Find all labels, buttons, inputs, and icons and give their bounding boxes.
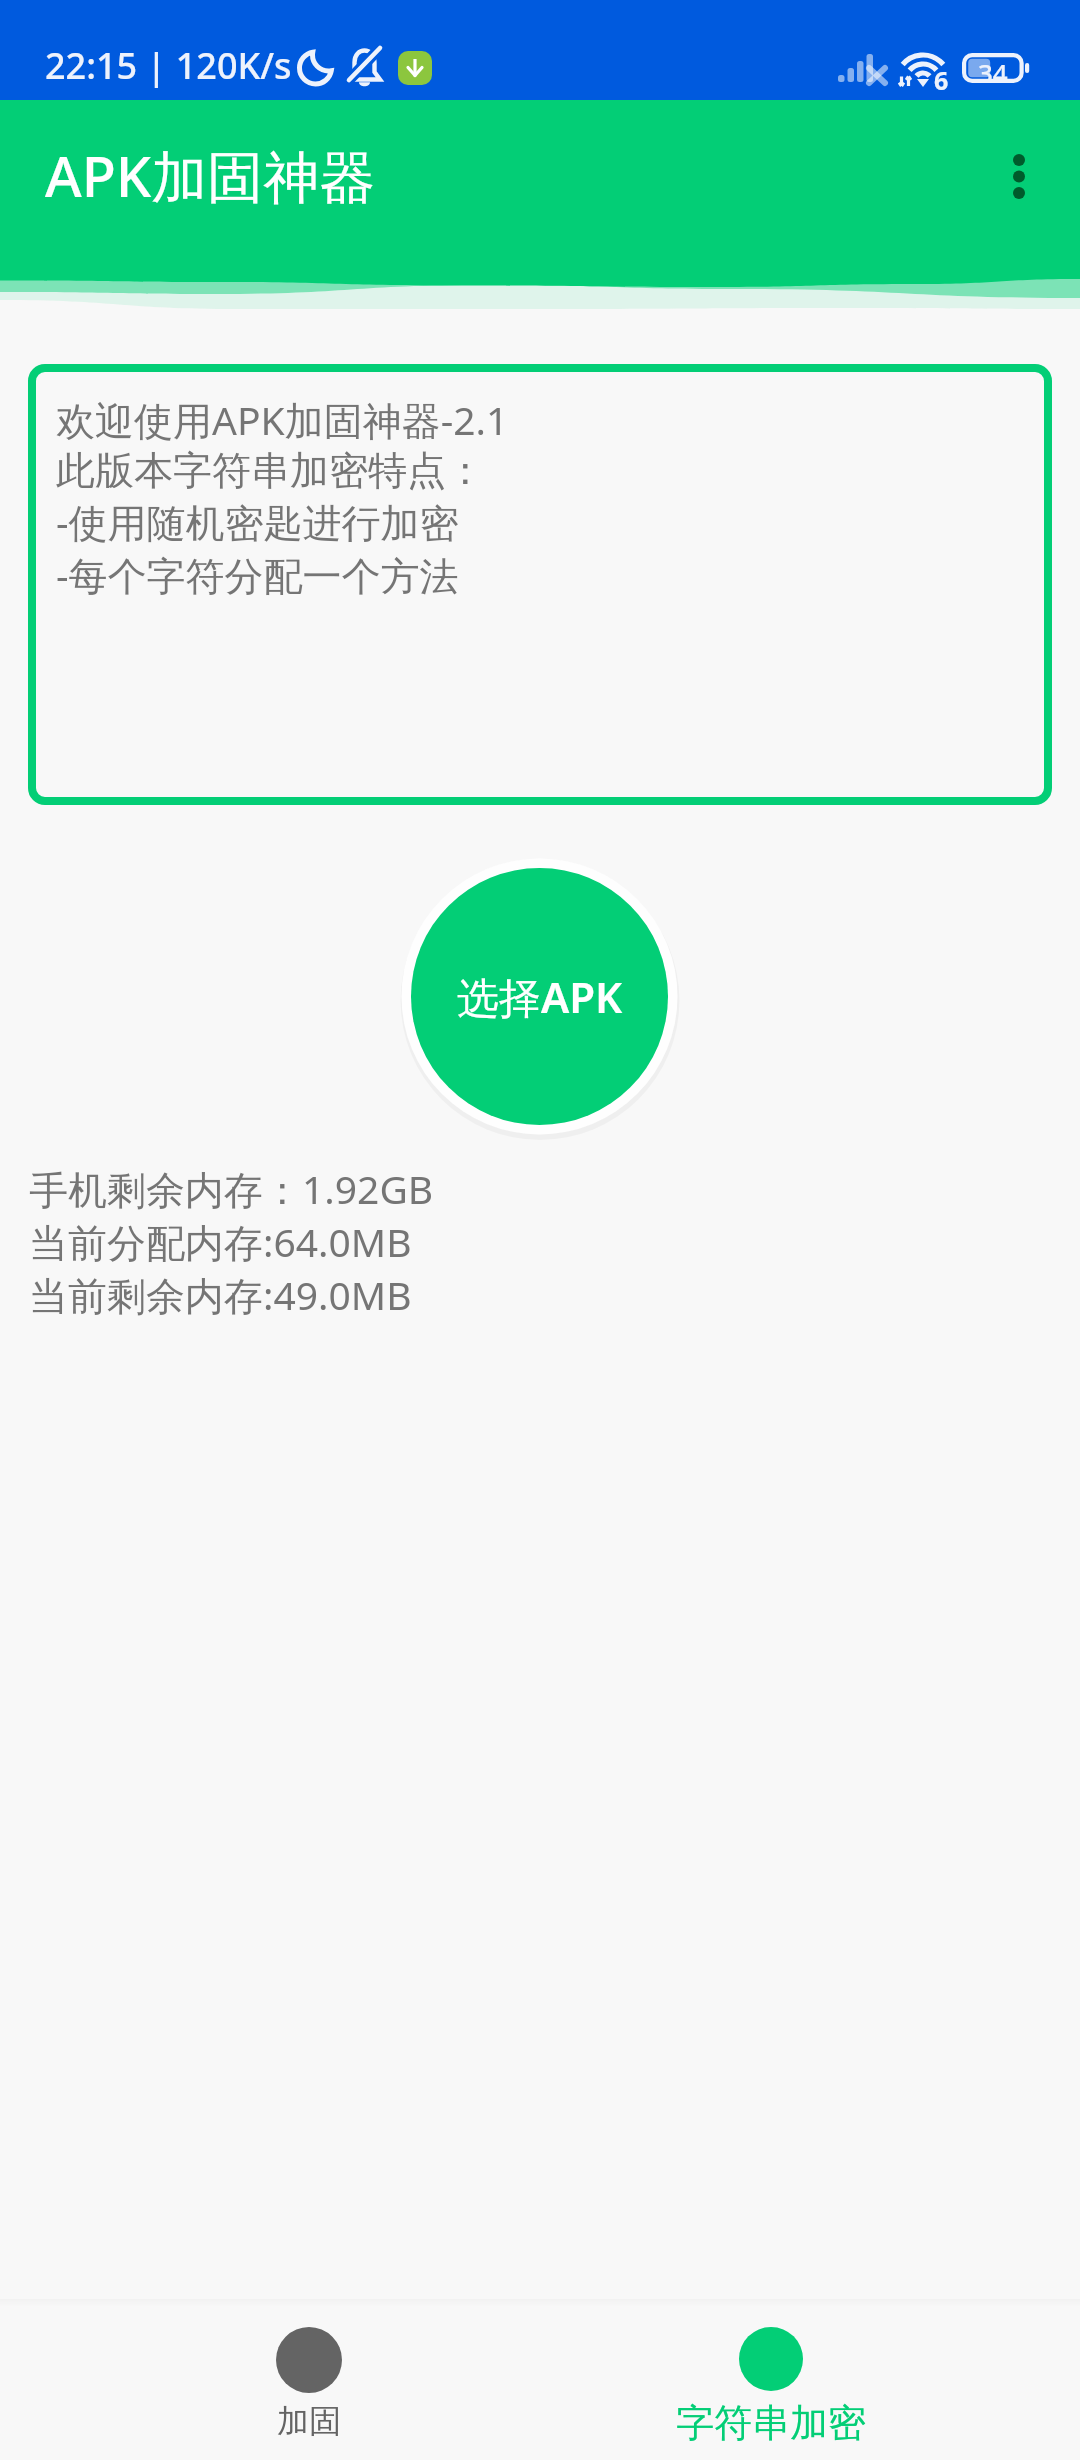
staticText: 加固 [277,2401,341,2441]
button[interactable]: 字符串加密 [540,2306,1002,2460]
staticText: 欢迎使用APK加固神器-2.1 [56,393,509,446]
button[interactable]: More options [969,127,1069,227]
staticText: -使用随机密匙进行加密 [56,495,459,548]
staticText: 选择APK [457,968,623,1025]
staticText: 手机剩余内存：1.92GB [29,1162,434,1215]
staticText: 22:15 | 120K/s [45,41,292,90]
staticText: 34 [978,55,1008,90]
button[interactable]: 选择APK [411,868,668,1125]
staticText: 6 [934,63,949,97]
staticText: 当前剩余内存:49.0MB [29,1268,412,1321]
staticText: -每个字符分配一个方法 [56,548,459,601]
staticText: 字符串加密 [676,2399,866,2447]
staticText: APK加固神器 [45,137,376,213]
staticText: 此版本字符串加密特点： [56,446,485,495]
staticText: 当前分配内存:64.0MB [29,1215,412,1268]
button[interactable]: 加固 [78,2306,540,2460]
